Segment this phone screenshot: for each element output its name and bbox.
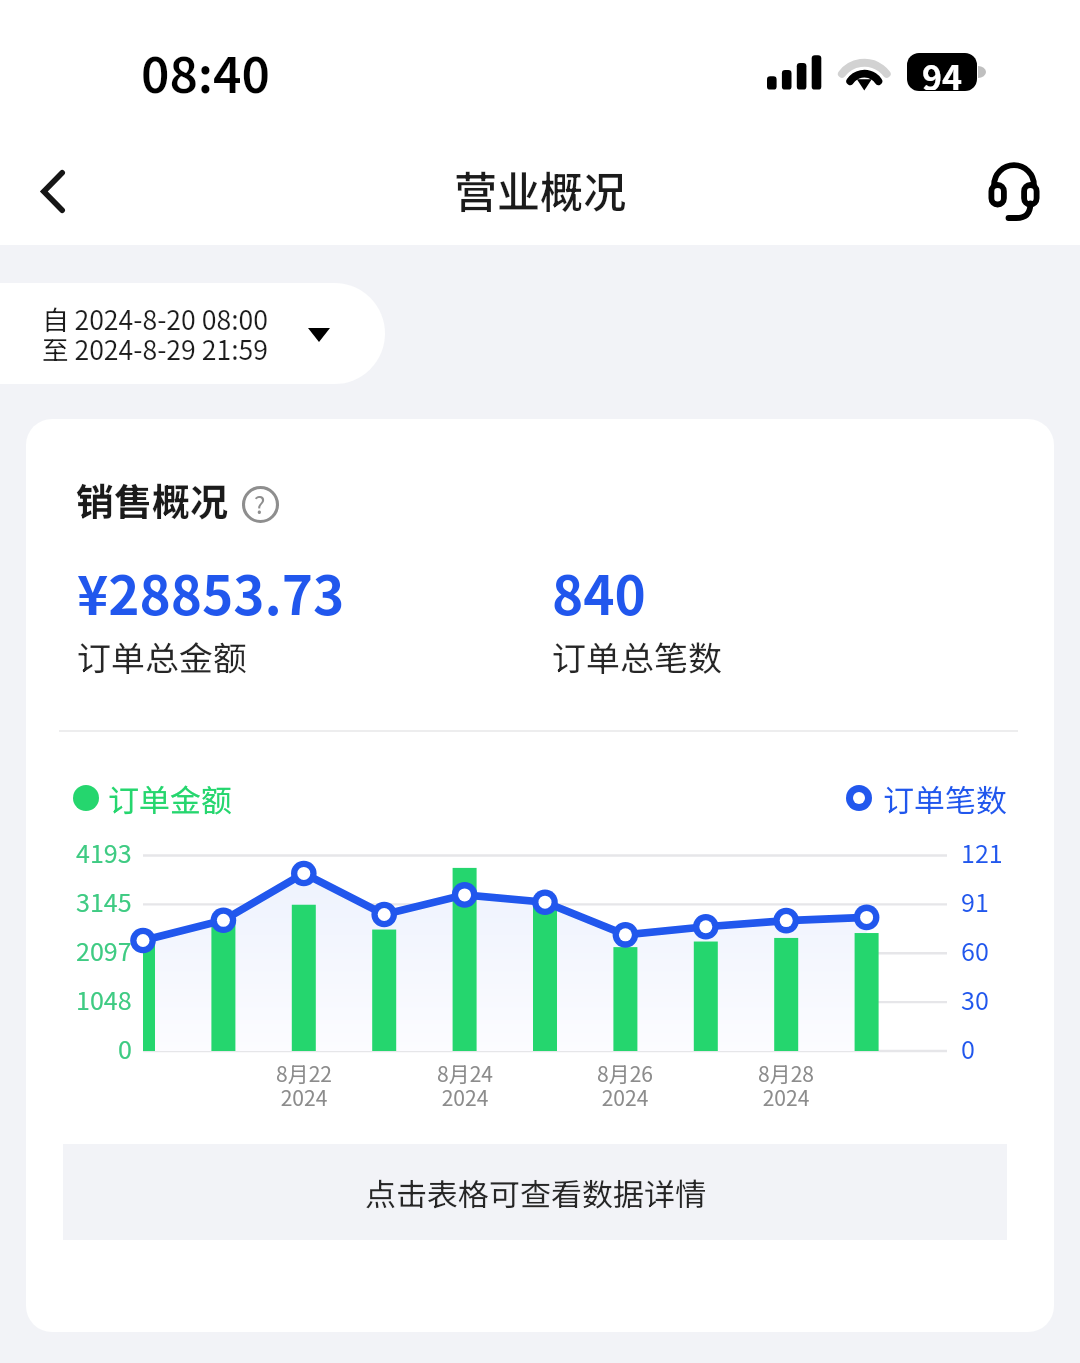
staticText: 840 xyxy=(552,554,646,631)
staticText: 订单总笔数 xyxy=(552,632,722,681)
staticText: 30 xyxy=(961,981,989,1017)
staticText: 点击表格可查看数据详情 xyxy=(365,1170,706,1215)
staticText: 4193 xyxy=(76,834,132,870)
staticText: 94 xyxy=(922,53,963,90)
staticText: 0 xyxy=(118,1030,132,1066)
staticText: 8月24 2024 xyxy=(395,1058,535,1112)
staticText: 订单总金额 xyxy=(77,632,247,681)
button[interactable]: Help xyxy=(240,484,280,524)
button[interactable]: 自 2024-8-20 08:00 至 2024-8-29 21:59 xyxy=(0,283,385,384)
staticText: 3145 xyxy=(76,883,132,919)
staticText: 2097 xyxy=(76,932,132,968)
staticText: 0 xyxy=(961,1030,975,1066)
staticText: 营业概况 xyxy=(454,158,626,220)
staticText: 订单笔数 xyxy=(883,776,1007,820)
staticText: 91 xyxy=(961,883,989,919)
staticText: ¥28853.73 xyxy=(77,554,345,631)
staticText: 8月22 2024 xyxy=(234,1058,374,1112)
staticText: 08:40 xyxy=(141,36,270,107)
staticText: 60 xyxy=(961,932,989,968)
staticText: ? xyxy=(254,486,266,521)
button[interactable]: Customer service xyxy=(978,147,1062,231)
staticText: 1048 xyxy=(76,981,132,1017)
staticText: 自 2024-8-20 08:00 至 2024-8-29 21:59 xyxy=(42,299,268,368)
staticText: 121 xyxy=(961,834,1003,870)
button[interactable]: Back xyxy=(18,147,102,231)
staticText: 销售概况 xyxy=(76,472,229,524)
staticText: 8月28 2024 xyxy=(716,1058,856,1112)
button[interactable]: 点击表格可查看数据详情 xyxy=(63,1144,1007,1240)
staticText: 订单金额 xyxy=(108,776,232,820)
staticText: 8月26 2024 xyxy=(555,1058,695,1112)
